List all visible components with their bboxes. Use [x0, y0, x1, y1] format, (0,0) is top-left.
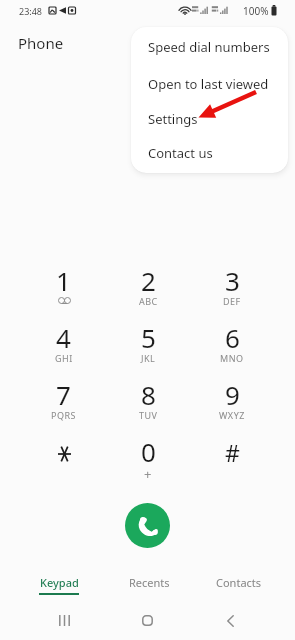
button[interactable]: 3	[190, 253, 274, 310]
button[interactable]: 0	[106, 424, 190, 481]
staticText: JKL	[141, 352, 156, 364]
button[interactable]	[21, 424, 106, 481]
button[interactable]: 5	[106, 310, 190, 367]
staticText: Contact us	[148, 144, 213, 162]
staticText: Recents	[129, 575, 170, 590]
button[interactable]: Back	[189, 601, 272, 640]
staticText: Speed dial numbers	[148, 38, 270, 56]
staticText: 1	[56, 263, 71, 298]
staticText: 2	[141, 263, 156, 298]
button[interactable]: Call	[125, 503, 170, 548]
staticText: #	[225, 437, 240, 468]
staticText: 0	[141, 434, 156, 469]
staticText: PQRS	[51, 409, 77, 421]
staticText: TUV	[139, 409, 158, 421]
staticText: 3	[225, 263, 240, 298]
staticText: 8	[141, 377, 156, 412]
button[interactable]: Settings	[131, 101, 288, 137]
staticText: Settings	[148, 110, 198, 128]
button[interactable]: Recents	[104, 569, 194, 601]
staticText: GHI	[55, 352, 73, 364]
button[interactable]: 1	[21, 253, 106, 310]
button[interactable]: #	[190, 424, 274, 481]
button[interactable]: Recent apps	[23, 601, 106, 640]
button[interactable]: 8	[106, 367, 190, 424]
button[interactable]: 9	[190, 367, 274, 424]
staticText: 7	[56, 377, 71, 412]
staticText: MNO	[220, 352, 244, 364]
button[interactable]: 7	[21, 367, 106, 424]
staticText: 4	[56, 320, 71, 355]
button[interactable]: Home	[106, 601, 189, 640]
button[interactable]: 2	[106, 253, 190, 310]
button[interactable]: Contact us	[131, 135, 288, 171]
staticText: 6	[225, 320, 240, 355]
button[interactable]: Open to last viewed	[131, 66, 288, 102]
button[interactable]: Speed dial numbers	[131, 29, 288, 65]
staticText: 9	[225, 377, 240, 412]
staticText: DEF	[223, 295, 241, 307]
staticText: 23:48	[19, 5, 43, 17]
button[interactable]: 6	[190, 310, 274, 367]
staticText: Open to last viewed	[148, 75, 269, 93]
staticText: Contacts	[216, 575, 262, 590]
staticText: Phone	[18, 33, 64, 53]
staticText: 100%	[243, 4, 269, 18]
staticText: ABC	[139, 295, 158, 307]
button[interactable]: 4	[21, 310, 106, 367]
button[interactable]: Contacts	[194, 569, 284, 601]
button[interactable]: Keypad	[14, 569, 104, 601]
staticText: +	[144, 465, 152, 483]
staticText: WXYZ	[219, 409, 245, 421]
staticText: Keypad	[40, 575, 79, 590]
staticText: 5	[141, 320, 156, 355]
